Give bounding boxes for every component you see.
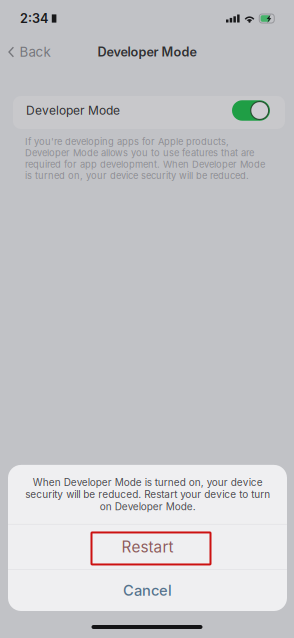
button[interactable]: Cancel [8,570,287,611]
staticText: Cancel [123,582,172,599]
staticText: 2:34 [20,11,48,26]
staticText: Restart [121,538,173,556]
staticText: If you're developing apps for Apple prod… [25,136,265,181]
staticText: Back [19,44,50,60]
button[interactable]: Developer Mode [13,96,285,129]
button[interactable]: Back [0,39,60,65]
staticText: Developer Mode [97,44,196,60]
staticText: When Developer Mode is turned on, your d… [25,476,270,513]
button[interactable]: Restart [8,525,287,569]
staticText: Developer Mode [26,103,120,118]
